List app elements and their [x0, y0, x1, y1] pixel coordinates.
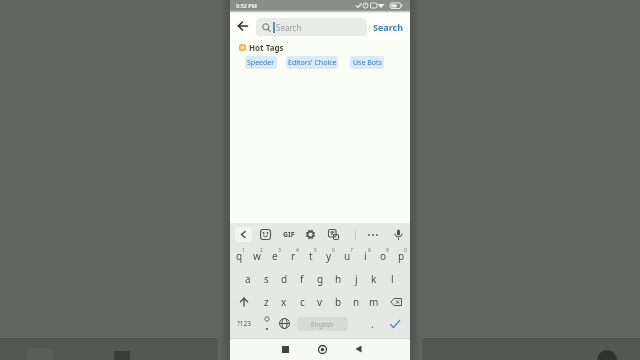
button[interactable]: e: [266, 244, 284, 267]
button[interactable]: Use Bots: [350, 56, 384, 69]
button[interactable]: [274, 338, 296, 360]
staticText: k: [371, 272, 377, 286]
button[interactable]: o: [374, 244, 392, 267]
staticText: e: [272, 249, 278, 263]
staticText: d: [281, 272, 288, 286]
button[interactable]: u: [338, 244, 356, 267]
button[interactable]: Search: [367, 13, 410, 40]
button[interactable]: r: [284, 244, 302, 267]
staticText: Search: [373, 21, 404, 33]
staticText: .: [371, 317, 374, 331]
staticText: x: [281, 295, 287, 309]
staticText: 7: [350, 247, 353, 254]
staticText: p: [398, 249, 405, 263]
button[interactable]: English: [297, 317, 348, 331]
button[interactable]: k: [365, 267, 383, 291]
staticText: 1: [242, 247, 245, 254]
staticText: a: [245, 272, 251, 286]
button[interactable]: n: [347, 291, 365, 313]
staticText: 9: [386, 247, 389, 254]
button[interactable]: [326, 227, 341, 242]
button[interactable]: [230, 291, 257, 313]
button[interactable]: Speeder: [245, 56, 277, 69]
button[interactable]: [383, 291, 410, 313]
button[interactable]: g: [311, 267, 329, 291]
staticText: c: [300, 295, 305, 309]
button[interactable]: l: [383, 267, 401, 291]
button[interactable]: c: [293, 291, 311, 313]
button[interactable]: d: [275, 267, 293, 291]
staticText: Speeder: [247, 58, 275, 68]
staticText: f: [300, 272, 304, 286]
staticText: j: [355, 272, 358, 286]
staticText: 5: [314, 247, 317, 254]
staticText: u: [344, 249, 351, 263]
staticText: Search: [276, 22, 302, 33]
staticText: w: [253, 249, 261, 263]
staticText: 3: [278, 247, 281, 254]
button[interactable]: [391, 227, 406, 242]
button[interactable]: x: [275, 291, 293, 313]
button[interactable]: t: [302, 244, 320, 267]
button[interactable]: w: [248, 244, 266, 267]
staticText: 9:52 PM: [236, 2, 257, 9]
staticText: r: [291, 249, 296, 263]
staticText: h: [335, 272, 342, 286]
staticText: m: [369, 295, 379, 309]
button[interactable]: [257, 313, 276, 334]
staticText: y: [326, 249, 332, 263]
staticText: n: [353, 295, 360, 309]
staticText: q: [236, 249, 243, 263]
button[interactable]: Search: [256, 18, 367, 36]
button[interactable]: [311, 338, 333, 360]
staticText: g: [317, 272, 324, 286]
button[interactable]: y: [320, 244, 338, 267]
button[interactable]: s: [257, 267, 275, 291]
button[interactable]: q: [230, 244, 248, 267]
button[interactable]: [365, 227, 381, 242]
staticText: 4: [296, 247, 299, 254]
staticText: 0: [404, 247, 407, 254]
staticText: l: [391, 272, 394, 286]
staticText: 2: [260, 247, 263, 254]
staticText: v: [317, 295, 323, 309]
button[interactable]: f: [293, 267, 311, 291]
staticText: o: [380, 249, 387, 263]
staticText: i: [364, 249, 367, 263]
staticText: t: [309, 249, 313, 263]
button[interactable]: a: [239, 267, 257, 291]
staticText: 6: [332, 247, 335, 254]
button[interactable]: [347, 338, 369, 360]
button[interactable]: i: [356, 244, 374, 267]
staticText: Hot Tags: [249, 42, 284, 53]
staticText: English: [311, 320, 334, 329]
staticText: b: [335, 295, 342, 309]
button[interactable]: [276, 313, 292, 334]
button[interactable]: [258, 227, 272, 242]
button[interactable]: z: [257, 291, 275, 313]
button[interactable]: p: [392, 244, 410, 267]
staticText: z: [264, 295, 269, 309]
button[interactable]: [230, 13, 256, 40]
button[interactable]: .: [363, 313, 381, 334]
button[interactable]: [235, 227, 252, 242]
button[interactable]: [384, 313, 406, 334]
button[interactable]: GIF: [280, 227, 297, 242]
button[interactable]: v: [311, 291, 329, 313]
staticText: s: [264, 272, 269, 286]
staticText: GIF: [283, 230, 295, 240]
staticText: Editors' Choice: [288, 58, 337, 68]
button[interactable]: h: [329, 267, 347, 291]
button[interactable]: j: [347, 267, 365, 291]
button[interactable]: [303, 227, 318, 242]
button[interactable]: b: [329, 291, 347, 313]
staticText: 8: [368, 247, 371, 254]
button[interactable]: ?123: [230, 313, 257, 334]
staticText: Use Bots: [353, 58, 382, 68]
staticText: ?123: [237, 319, 251, 328]
button[interactable]: Editors' Choice: [286, 56, 338, 69]
button[interactable]: m: [365, 291, 383, 313]
